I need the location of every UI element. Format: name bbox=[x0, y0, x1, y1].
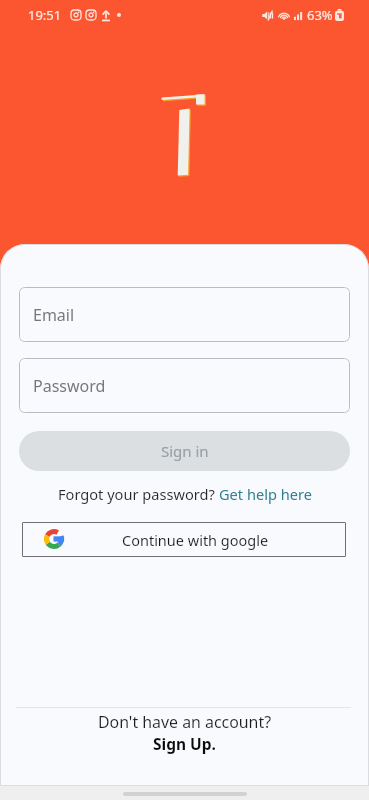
button[interactable]: Continue with google bbox=[22, 522, 346, 557]
staticText: 63% bbox=[307, 6, 333, 24]
button[interactable]: Email bbox=[19, 287, 350, 342]
staticText: Email bbox=[33, 304, 75, 326]
staticText: Forgot your password? bbox=[58, 484, 219, 504]
staticText: Password bbox=[33, 375, 106, 397]
staticText: Continue with google bbox=[122, 530, 269, 550]
staticText: Sign in bbox=[161, 441, 209, 461]
staticText: Get help here bbox=[219, 484, 312, 504]
staticText: Sign Up. bbox=[0, 733, 369, 754]
button[interactable]: Get help here bbox=[219, 484, 312, 504]
staticText: 19:51 bbox=[28, 6, 62, 24]
staticText: Don't have an account? bbox=[0, 711, 369, 733]
button[interactable]: Sign Up. bbox=[0, 733, 369, 754]
button[interactable]: Password bbox=[19, 358, 350, 413]
button[interactable]: Sign in bbox=[19, 431, 350, 471]
